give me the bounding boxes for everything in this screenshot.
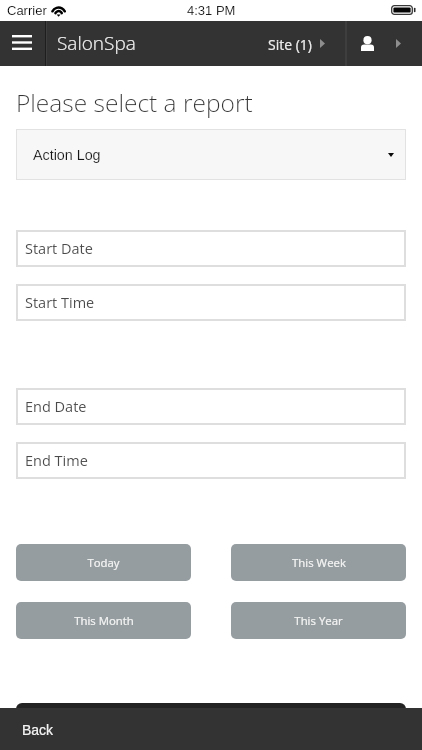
- staticText: SalonSpa: [57, 30, 136, 56]
- button[interactable]: Start Date: [16, 230, 406, 267]
- staticText: Back: [22, 722, 54, 738]
- staticText: Start Date: [25, 239, 93, 259]
- staticText: This Year: [294, 613, 343, 629]
- button[interactable]: This Month: [16, 602, 191, 639]
- button[interactable]: Today: [16, 544, 191, 581]
- button[interactable]: Run report: [16, 703, 406, 748]
- button[interactable]: Back: [0, 708, 74, 750]
- button[interactable]: End Time: [16, 442, 406, 479]
- staticText: Action Log: [33, 147, 101, 163]
- staticText: Start Time: [25, 293, 95, 313]
- staticText: This Week: [292, 555, 346, 571]
- button[interactable]: Open navigation menu: [0, 21, 44, 66]
- staticText: Site (1): [268, 35, 312, 54]
- staticText: 4:31 PM: [187, 3, 236, 18]
- staticText: This Month: [74, 613, 134, 629]
- button[interactable]: End Date: [16, 388, 406, 425]
- staticText: Carrier: [7, 3, 47, 18]
- button[interactable]: Start Time: [16, 284, 406, 321]
- button[interactable]: Account: [347, 21, 422, 66]
- staticText: End Time: [25, 451, 88, 471]
- button[interactable]: Action Log: [16, 129, 406, 180]
- button[interactable]: This Week: [231, 544, 406, 581]
- staticText: End Date: [25, 397, 87, 417]
- staticText: Today: [87, 555, 120, 571]
- staticText: Please select a report: [16, 86, 253, 119]
- button[interactable]: This Year: [231, 602, 406, 639]
- button[interactable]: Site (1): [258, 21, 346, 66]
